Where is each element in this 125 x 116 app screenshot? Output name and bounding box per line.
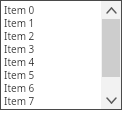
staticText: Item 0 <box>4 3 35 16</box>
staticText: Item 5 <box>4 68 35 81</box>
button[interactable]: Scroll down <box>101 91 121 109</box>
staticText: Item 4 <box>4 55 35 68</box>
staticText: Item 7 <box>4 94 35 107</box>
button[interactable]: Item 7 <box>1 94 101 107</box>
staticText: Item 3 <box>4 42 35 55</box>
button[interactable]: Item 6 <box>1 81 101 94</box>
staticText: Item 6 <box>4 81 35 94</box>
button[interactable]: Scroll up <box>101 1 121 19</box>
button[interactable]: Item 5 <box>1 68 101 81</box>
button[interactable]: Item 4 <box>1 55 101 68</box>
button[interactable]: Item 3 <box>1 42 101 55</box>
button[interactable]: Item 2 <box>1 29 101 42</box>
staticText: Item 1 <box>4 16 35 29</box>
staticText: Item 2 <box>4 29 35 42</box>
button[interactable]: Item 0 <box>1 3 101 16</box>
button[interactable]: Item 1 <box>1 16 101 29</box>
